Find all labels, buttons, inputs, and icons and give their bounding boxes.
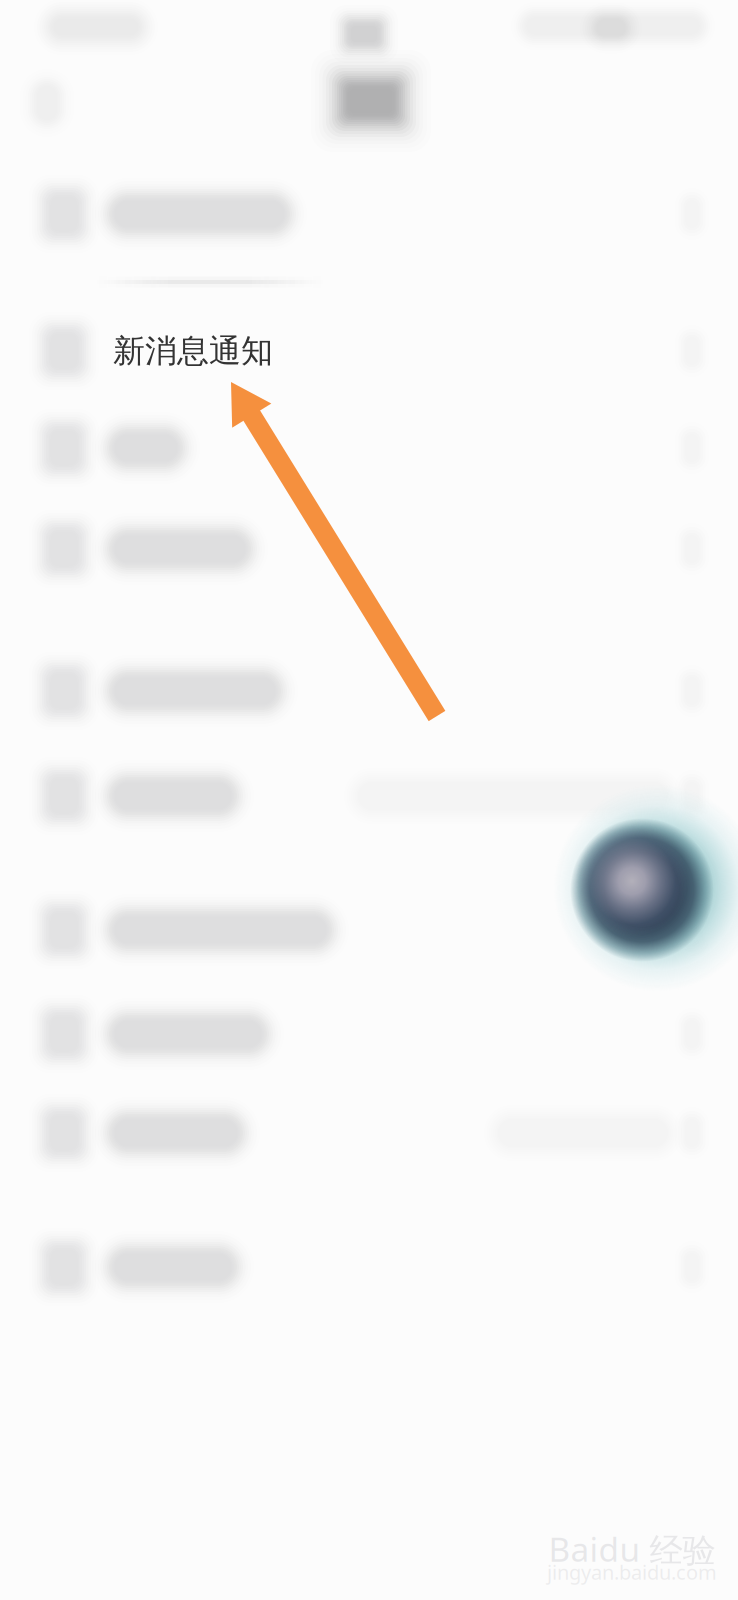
button[interactable]: [0, 0, 738, 1600]
button[interactable]: [0, 0, 738, 1600]
staticText: Baidu 经验: [548, 1527, 715, 1571]
button[interactable]: 新消息通知: [0, 0, 738, 1600]
button[interactable]: [0, 0, 738, 1600]
staticText: jingyan.baidu.com: [547, 1559, 717, 1585]
button[interactable]: [0, 0, 738, 1600]
button[interactable]: [0, 0, 738, 1600]
button[interactable]: [0, 0, 738, 1600]
button[interactable]: [0, 0, 738, 1600]
staticText: 新消息通知: [113, 331, 273, 371]
button[interactable]: Back: [0, 48, 102, 158]
button[interactable]: [0, 0, 738, 1600]
button[interactable]: [0, 0, 738, 1600]
